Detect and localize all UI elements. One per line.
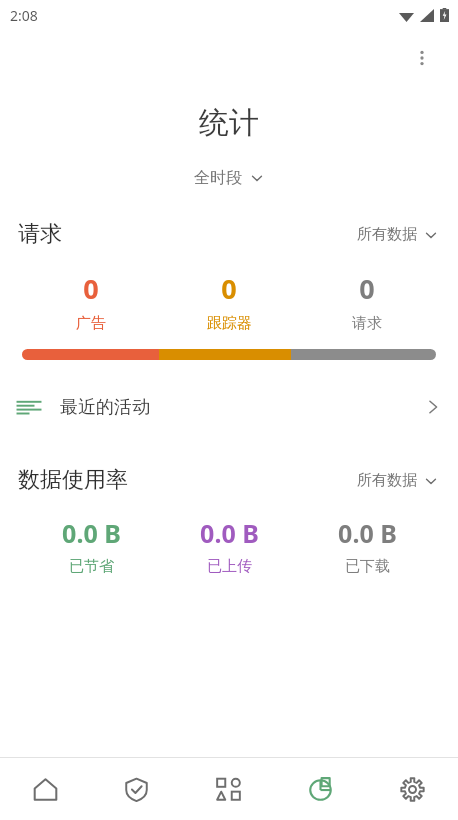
staticText: 数据使用率 [18,466,128,494]
staticText: 已节省 [69,557,114,576]
staticText: 跟踪器 [207,314,252,333]
button[interactable]: 所有数据 [351,221,444,248]
staticText: 0 [359,270,375,307]
staticText: 已上传 [207,557,252,576]
button[interactable]: 0 [160,270,298,333]
staticText: 0.0 B [62,516,121,550]
button[interactable]: 0 [22,270,160,333]
staticText: 请求 [18,220,62,248]
button[interactable]: 0 [298,270,436,333]
staticText: 最近的活动 [60,396,150,419]
staticText: 2:08 [10,6,38,25]
staticText: 所有数据 [357,471,417,490]
button[interactable]: Apps [182,758,274,820]
staticText: 所有数据 [357,225,417,244]
staticText: 0.0 B [200,516,259,550]
staticText: 已下载 [345,557,390,576]
staticText: 0.0 B [338,516,397,550]
button[interactable]: 全时段 [186,164,272,192]
staticText: 请求 [352,314,382,333]
button[interactable]: Statistics [274,758,366,820]
staticText: 0 [221,270,237,307]
staticText: 广告 [76,314,106,333]
button[interactable]: Protection [91,758,182,820]
button[interactable]: Settings [366,758,458,820]
button[interactable]: 最近的活动 [0,388,458,426]
button[interactable]: 0.0 B [22,516,160,576]
staticText: 全时段 [194,168,242,188]
button[interactable]: 所有数据 [351,467,444,494]
button[interactable]: Home [0,758,91,820]
staticText: 统计 [199,104,259,142]
button[interactable]: 0.0 B [160,516,298,576]
staticText: 0 [83,270,99,307]
button[interactable]: 0.0 B [298,516,436,576]
button[interactable]: More options [400,36,444,80]
